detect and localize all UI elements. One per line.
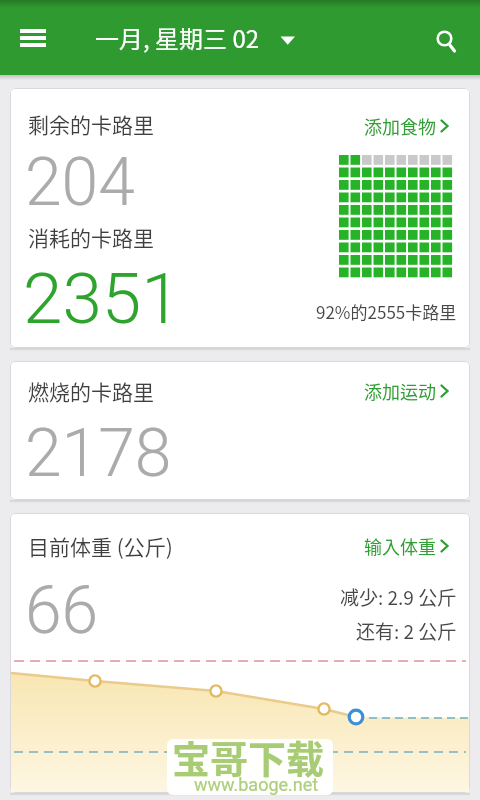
button[interactable] xyxy=(350,374,456,406)
staticText: 92%的2555卡路里 xyxy=(316,299,457,324)
staticText: 消耗的卡路里 xyxy=(28,222,154,252)
staticText: 还有: 2 公斤 xyxy=(356,617,457,645)
staticText: 燃烧的卡路里 xyxy=(28,376,154,406)
button[interactable] xyxy=(0,0,480,75)
staticText: 目前体重 (公斤) xyxy=(28,531,173,561)
button[interactable] xyxy=(424,18,466,60)
staticText: 减少: 2.9 公斤 xyxy=(340,583,457,611)
button[interactable]: 一月, 星期三 02 xyxy=(90,14,310,62)
staticText: 宝哥下载 xyxy=(172,729,325,784)
staticText: 2351 xyxy=(23,257,181,340)
staticText: 输入体重 xyxy=(364,533,436,559)
staticText: 添加食物 xyxy=(364,113,436,139)
button[interactable] xyxy=(350,108,456,140)
staticText: 添加运动 xyxy=(364,378,436,404)
staticText: www.baoge.net xyxy=(194,774,319,795)
staticText: 204 xyxy=(25,144,135,221)
button[interactable] xyxy=(12,22,54,56)
staticText: 剩余的卡路里 xyxy=(28,109,154,139)
staticText: 一月, 星期三 02 xyxy=(95,20,260,55)
button[interactable] xyxy=(350,529,456,561)
staticText: 2178 xyxy=(25,415,172,492)
button[interactable] xyxy=(167,739,333,795)
staticText: 66 xyxy=(25,572,99,649)
